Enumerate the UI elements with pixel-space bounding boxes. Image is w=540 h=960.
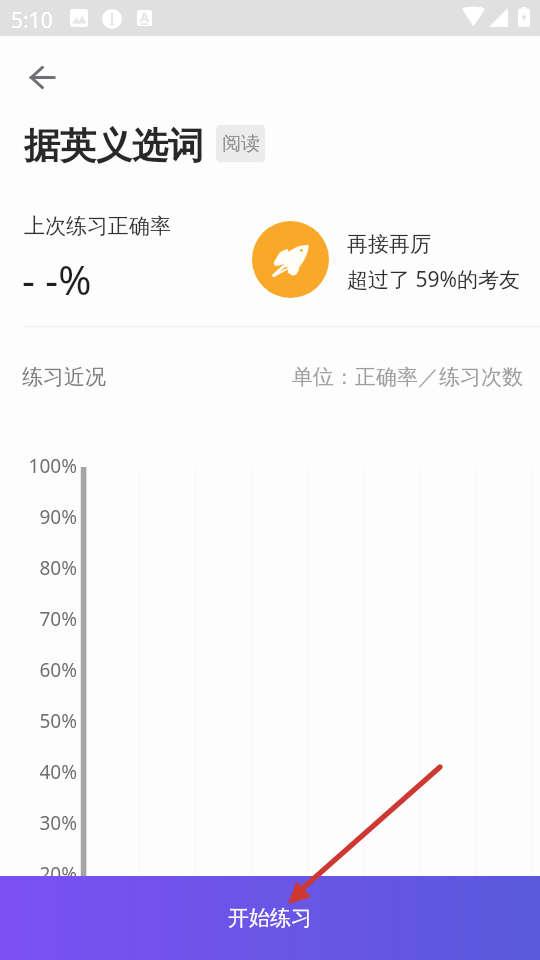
button[interactable]: Rocket badge [252,221,329,298]
staticText: 单位：正确率／练习次数 [292,364,523,390]
staticText: - -% [22,252,92,306]
staticText: 再接再厉 [347,231,431,257]
staticText: 超过了 59%的考友 [347,265,520,294]
staticText: 阅读 [222,132,260,156]
staticText: 60% [39,657,77,683]
staticText: 80% [39,555,77,581]
staticText: 100% [28,453,77,479]
staticText: 练习近况 [22,364,106,390]
button[interactable]: 据英义选词 [24,123,204,168]
button[interactable]: 阅读 [216,125,265,162]
staticText: 20% [39,861,77,887]
staticText: 90% [39,504,77,530]
staticText: 开始练习 [228,905,312,931]
staticText: 5:10 [11,6,53,35]
staticText: 据英义选词 [24,123,204,168]
staticText: 上次练习正确率 [24,213,171,239]
staticText: 70% [39,606,77,632]
staticText: 40% [39,759,77,785]
button[interactable]: Back [18,53,66,101]
button[interactable]: 开始练习 [0,876,540,960]
staticText: 30% [39,810,77,836]
staticText: 50% [39,708,77,734]
